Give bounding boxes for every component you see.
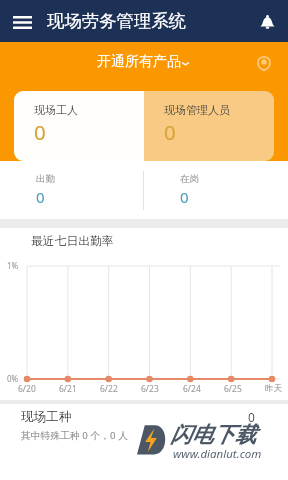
staticText: www.dianlut.com bbox=[173, 446, 262, 462]
staticText: 0 bbox=[36, 187, 45, 207]
button[interactable]: 现场工人 bbox=[14, 91, 144, 161]
staticText: 0% bbox=[7, 373, 19, 384]
staticText: 现场劳务管理系统 bbox=[47, 10, 187, 32]
staticText: 0 bbox=[248, 409, 255, 425]
staticText: 6/25 bbox=[224, 383, 242, 395]
staticText: 闪电下载 bbox=[170, 421, 256, 448]
staticText: 0 bbox=[164, 118, 176, 146]
staticText: 0 bbox=[34, 118, 46, 146]
staticText: 出勤 bbox=[36, 173, 55, 185]
staticText: 开通所有产品 bbox=[97, 53, 181, 71]
button[interactable]: 开通所有产品 bbox=[94, 50, 192, 74]
staticText: 现场管理人员 bbox=[164, 103, 230, 117]
staticText: 6/23 bbox=[141, 383, 159, 395]
staticText: 6/20 bbox=[18, 383, 36, 395]
staticText: 6/22 bbox=[100, 383, 118, 395]
staticText: 现场工人 bbox=[34, 103, 78, 117]
staticText: 昨天 bbox=[265, 383, 282, 394]
staticText: 6/21 bbox=[59, 383, 77, 395]
button[interactable]: Notifications bbox=[246, 0, 288, 42]
button[interactable]: 现场管理人员 bbox=[144, 91, 274, 161]
staticText: 其中特殊工种 0 个，0 人 bbox=[21, 429, 129, 442]
staticText: 0 bbox=[180, 187, 189, 207]
staticText: 现场工种 bbox=[21, 409, 72, 425]
button[interactable]: 出勤 bbox=[0, 161, 143, 219]
staticText: 6/24 bbox=[183, 383, 201, 395]
staticText: 最近七日出勤率 bbox=[31, 234, 114, 249]
staticText: 在岗 bbox=[180, 173, 199, 185]
button[interactable]: Menu bbox=[0, 0, 45, 42]
staticText: 1% bbox=[7, 260, 19, 271]
button[interactable]: Location bbox=[250, 49, 277, 76]
button[interactable]: 现场工种 bbox=[0, 404, 288, 442]
button[interactable]: 在岗 bbox=[144, 161, 288, 219]
